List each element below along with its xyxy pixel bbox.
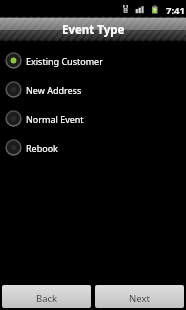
staticText: New Address <box>26 84 82 96</box>
button[interactable]: Rebook <box>0 133 186 162</box>
staticText: Event Type <box>62 22 125 38</box>
staticText: Next <box>129 292 150 305</box>
button[interactable]: Normal Event <box>0 104 186 133</box>
staticText: Back <box>36 292 58 305</box>
staticText: 7:41 <box>166 4 185 17</box>
button[interactable]: New Address <box>0 75 186 104</box>
button[interactable]: Next <box>95 285 184 308</box>
staticText: Rebook <box>26 142 58 154</box>
button[interactable]: Existing Customer <box>0 46 186 75</box>
button[interactable]: Back <box>2 285 91 308</box>
staticText: Normal Event <box>26 113 84 125</box>
staticText: Existing Customer <box>26 55 103 67</box>
